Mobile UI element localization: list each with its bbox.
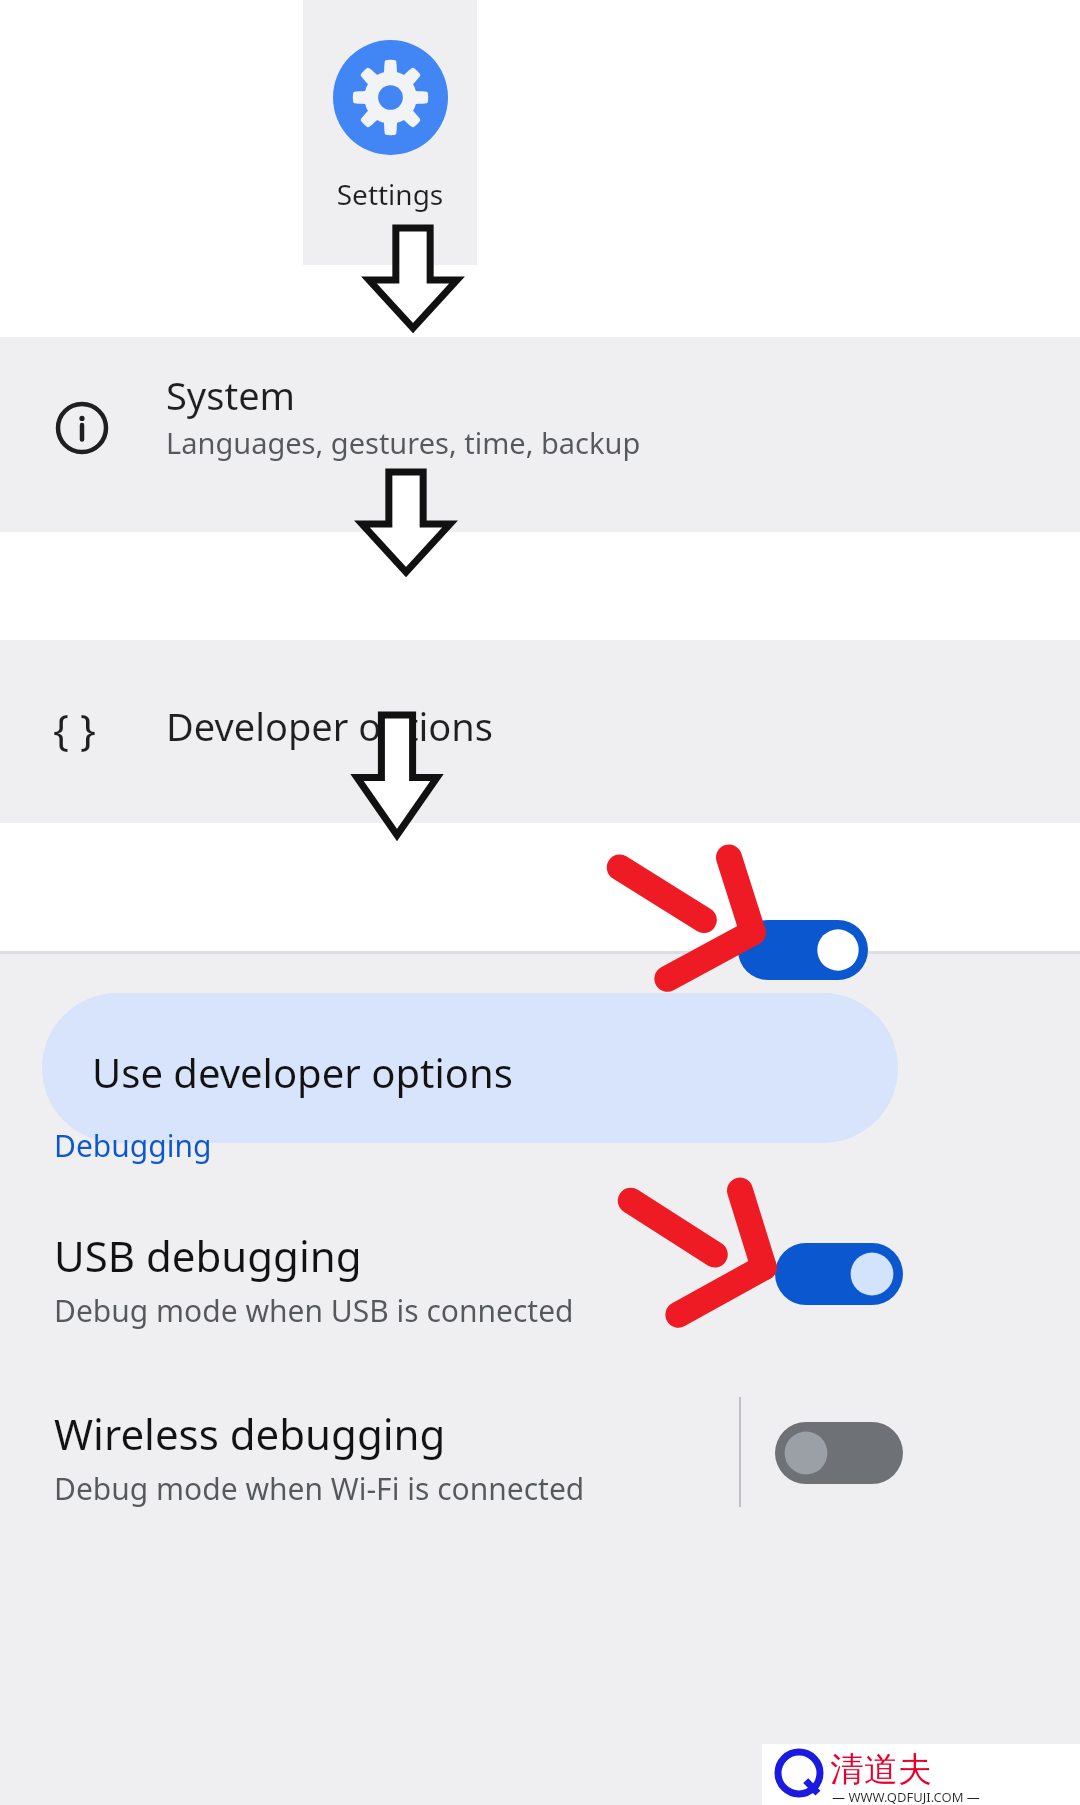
staticText: Wireless debugging [54, 1405, 446, 1462]
button[interactable]: Wireless debugging toggle [775, 1422, 903, 1484]
button[interactable]: Wireless debugging [0, 1385, 1080, 1545]
button[interactable]: Use developer options [42, 993, 898, 1143]
staticText: Settings [303, 175, 477, 213]
staticText: Debug mode when Wi-Fi is connected [54, 1468, 585, 1509]
staticText: { } [53, 700, 96, 757]
staticText: Developer options [166, 700, 493, 752]
staticText: Languages, gestures, time, backup [166, 423, 641, 462]
button[interactable]: USB debugging [0, 1205, 1080, 1365]
staticText: — WWW.QDFUJI.COM — [832, 1788, 980, 1805]
staticText: Debugging [54, 1125, 212, 1166]
button[interactable]: Use developer options toggle [738, 920, 868, 980]
button[interactable]: System [0, 337, 1080, 532]
button[interactable]: Settings app [303, 0, 477, 265]
staticText: Debug mode when USB is connected [54, 1290, 574, 1331]
button[interactable]: { } [0, 640, 1080, 823]
staticText: 清道夫 [830, 1748, 932, 1791]
button[interactable]: USB debugging toggle [775, 1243, 903, 1305]
staticText: Use developer options [92, 1045, 513, 1099]
staticText: USB debugging [54, 1227, 362, 1284]
staticText: System [166, 369, 296, 421]
